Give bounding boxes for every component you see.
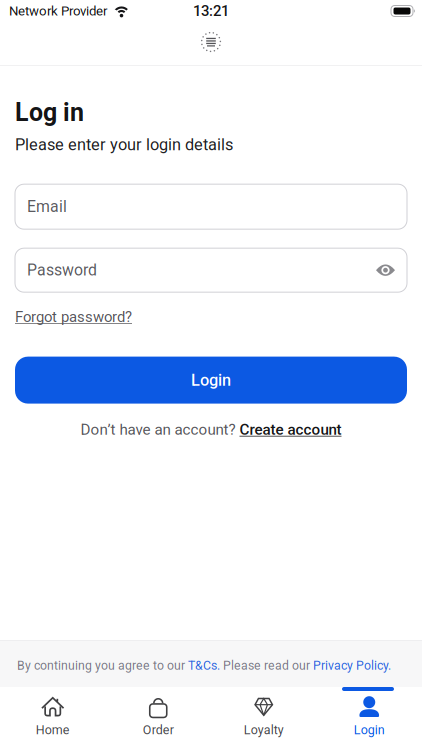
staticText: Log in <box>15 98 84 127</box>
staticText: Privacy Policy. <box>313 658 391 673</box>
staticText: Email <box>27 197 67 216</box>
staticText: Loyalty <box>244 723 284 737</box>
button[interactable]: T&Cs. <box>188 658 220 673</box>
staticText: Forgot password? <box>15 308 132 326</box>
staticText: T&Cs. <box>188 658 220 673</box>
staticText: Login <box>191 371 231 390</box>
button[interactable]: Home <box>0 690 105 742</box>
staticText: Login <box>354 723 385 737</box>
button[interactable]: Login <box>316 690 422 742</box>
button[interactable]: Forgot password? <box>15 292 132 326</box>
staticText: Create account <box>239 421 341 438</box>
button[interactable]: Login <box>15 357 407 404</box>
staticText: By continuing you agree to our <box>17 658 188 673</box>
button[interactable]: Loyalty <box>211 690 316 742</box>
button[interactable]: Show password <box>376 264 407 276</box>
staticText: Home <box>36 723 70 737</box>
staticText: Don’t have an account? <box>80 421 239 438</box>
button[interactable]: Create account <box>239 421 341 438</box>
staticText: Order <box>143 723 174 737</box>
staticText: 13:21 <box>193 2 229 20</box>
staticText: Password <box>27 261 97 279</box>
staticText: Please enter your login details <box>15 135 233 154</box>
button[interactable]: Privacy Policy. <box>313 658 391 673</box>
staticText: Network Provider <box>9 3 107 19</box>
staticText: Please read our <box>220 658 313 673</box>
button[interactable]: Order <box>105 690 211 742</box>
